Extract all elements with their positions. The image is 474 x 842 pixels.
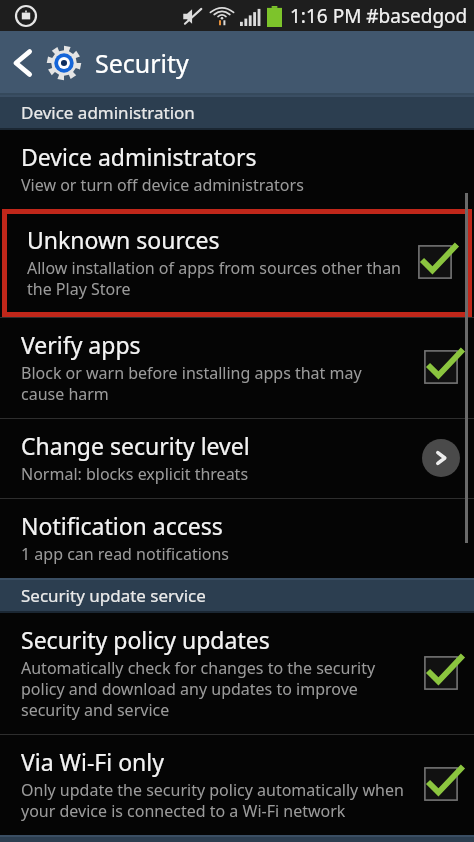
staticText: Via Wi-Fi only xyxy=(21,746,164,777)
other: Checked xyxy=(412,239,458,285)
staticText: Notification access xyxy=(21,510,223,541)
staticText: Normal: blocks explicit threats xyxy=(21,463,249,485)
staticText: Change security level xyxy=(21,430,250,461)
staticText: Automatically check for changes to the s… xyxy=(21,657,408,721)
button[interactable]: Security policy updates xyxy=(0,613,474,734)
button[interactable]: Back xyxy=(0,31,203,95)
button[interactable]: Unknown sources xyxy=(2,209,472,317)
staticText: 1:16 PM #basedgod xyxy=(290,3,468,29)
other: Back xyxy=(12,48,34,78)
button[interactable]: Device administrators xyxy=(0,130,474,209)
other: Checked xyxy=(418,761,464,807)
staticText: Unknown sources xyxy=(27,224,220,255)
staticText: Device administration xyxy=(21,101,195,124)
staticText: View or turn off device administrators xyxy=(21,174,304,196)
staticText: Device administrators xyxy=(21,141,257,172)
button[interactable]: Verify apps xyxy=(0,318,474,418)
other: Checked xyxy=(418,650,464,696)
button[interactable]: Via Wi-Fi only xyxy=(0,735,474,835)
other: Checked xyxy=(418,344,464,390)
staticText: Allow installation of apps from sources … xyxy=(27,257,402,300)
staticText: Verify apps xyxy=(21,329,141,360)
staticText: Security policy updates xyxy=(21,624,270,655)
staticText: Block or warn before installing apps tha… xyxy=(21,362,408,405)
staticText: Security update service xyxy=(21,584,206,607)
button[interactable]: Change security level xyxy=(0,419,474,498)
other: Change security level xyxy=(418,435,464,481)
button[interactable]: Notification access xyxy=(0,499,474,578)
staticText: Security xyxy=(95,46,189,80)
staticText: 1 app can read notifications xyxy=(21,543,230,565)
staticText: Only update the security policy automati… xyxy=(21,779,408,822)
